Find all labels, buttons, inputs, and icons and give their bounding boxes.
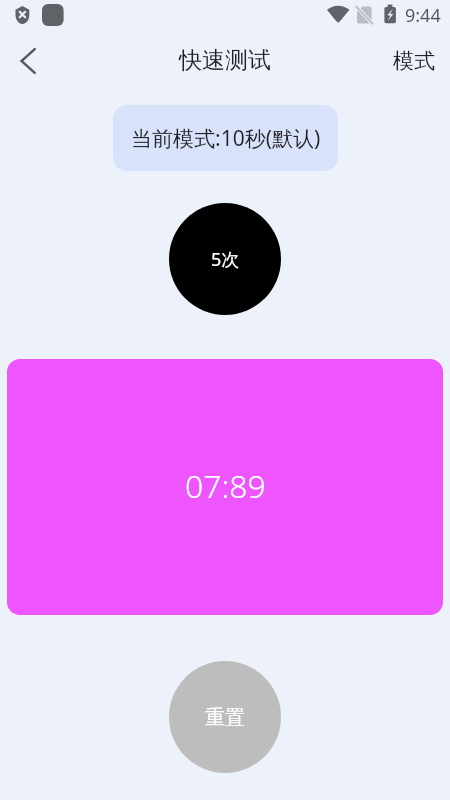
staticText: 5次 bbox=[211, 247, 240, 272]
staticText: 07:89 bbox=[185, 464, 266, 508]
staticText: 模式 bbox=[393, 48, 435, 74]
staticText: 9:44 bbox=[405, 3, 441, 28]
button[interactable]: 重置 bbox=[169, 661, 281, 773]
button[interactable]: 模式 bbox=[390, 39, 438, 83]
button[interactable]: 07:89 bbox=[7, 359, 443, 615]
staticText: 快速测试 bbox=[179, 46, 271, 75]
button[interactable]: 5次 bbox=[169, 203, 281, 315]
staticText: 重置 bbox=[205, 705, 245, 730]
button[interactable]: 当前模式:10秒(默认) bbox=[113, 105, 338, 171]
staticText: 当前模式:10秒(默认) bbox=[131, 124, 321, 153]
button[interactable]: Back bbox=[3, 36, 53, 86]
